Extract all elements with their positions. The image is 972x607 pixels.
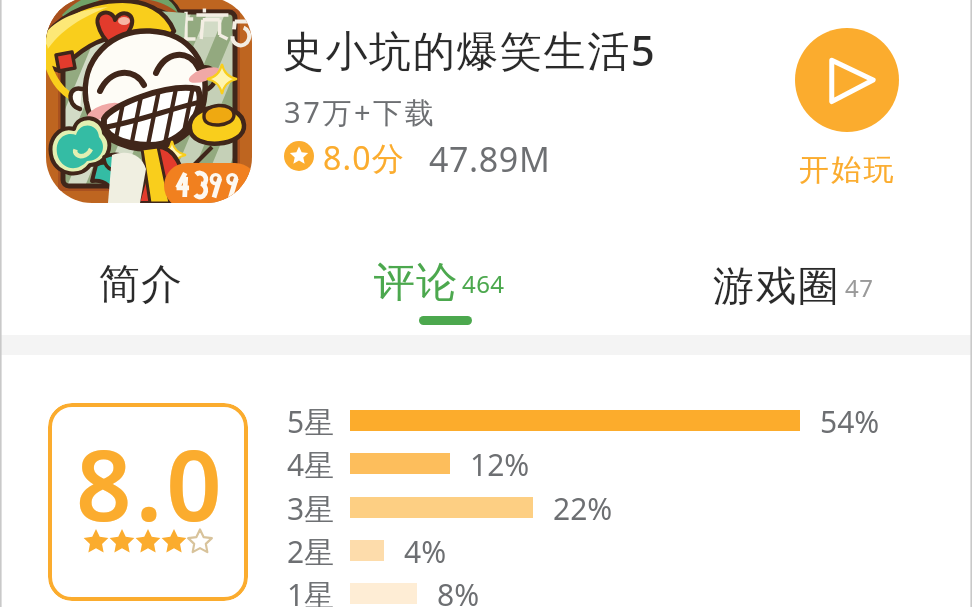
staticText: 8% (437, 574, 480, 607)
staticText: 464 (462, 267, 505, 300)
staticText: 5星 (287, 401, 335, 442)
button[interactable]: App icon (46, 0, 252, 203)
staticText: 4% (404, 531, 447, 572)
staticText: 47.89M (429, 136, 551, 182)
staticText: 2星 (287, 531, 335, 572)
staticText: 4星 (287, 444, 335, 485)
staticText: 12% (470, 444, 530, 485)
staticText: 8.0 (76, 417, 226, 549)
staticText: 评论 (373, 257, 458, 309)
staticText: 史小坑的爆笑生活5 (282, 21, 657, 78)
button[interactable]: 游戏圈 (713, 261, 874, 313)
button[interactable]: 简介 (98, 259, 183, 311)
button[interactable]: 评论 (373, 257, 505, 309)
other: Play (795, 28, 899, 132)
staticText: 8.0分 (323, 136, 405, 180)
staticText: 47 (845, 271, 874, 304)
staticText: 22% (553, 488, 613, 529)
staticText: 37万+下载 (284, 92, 437, 132)
staticText: 开始玩 (799, 151, 896, 189)
staticText: 1星 (287, 574, 335, 607)
staticText: 简介 (98, 259, 183, 311)
staticText: 54% (820, 401, 880, 442)
button[interactable]: 8.0 (48, 403, 248, 601)
button[interactable]: Play (786, 28, 908, 189)
staticText: 游戏圈 (713, 261, 841, 313)
staticText: 3星 (287, 488, 335, 529)
